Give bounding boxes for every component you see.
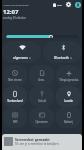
button[interactable]: NFC (3, 107, 27, 128)
button[interactable]: Screenshot gemaakt (2, 134, 82, 150)
staticText: Niet storen (8, 78, 22, 82)
staticText: Opnemen (35, 120, 48, 124)
staticText: zondag 30 oktober (3, 16, 26, 20)
staticText: 28% (57, 3, 62, 6)
button[interactable]: Batterij (56, 107, 81, 128)
button[interactable]: Niet storen (3, 65, 27, 86)
staticText: NFC (13, 120, 18, 124)
staticText: Toetsenbord (7, 99, 23, 103)
button[interactable]: Geluid (29, 86, 54, 107)
button[interactable]: Gebruiker (74, 1, 81, 8)
button[interactable]: Helderheid (6, 35, 78, 38)
button[interactable]: Vliegtuigmodus (56, 65, 81, 86)
staticText: Screenshot gemaakt (15, 137, 50, 142)
button[interactable]: Instellingen (65, 1, 72, 8)
staticText: algemeen (13, 56, 28, 60)
staticText: Bluetooth (54, 56, 69, 60)
button[interactable]: Opnemen (29, 107, 54, 128)
staticText: 12:07 (3, 8, 19, 16)
staticText: Tik om je screenshot te bekijken (15, 142, 59, 146)
staticText: Batterij (64, 120, 73, 124)
staticText: Geluid (38, 99, 46, 103)
button[interactable]: Bluetooth (43, 41, 82, 63)
staticText: Gsm-netwerkoproep (29, 78, 54, 82)
staticText: Alleen noodoproepen (3, 3, 29, 6)
staticText: Locatie (64, 99, 73, 103)
staticText: Vliegtuigmodus (59, 78, 79, 82)
button[interactable]: algemeen (2, 41, 41, 63)
button[interactable]: Toetsenbord (3, 86, 27, 107)
button[interactable]: Locatie (56, 86, 81, 107)
button[interactable]: Gsm-netwerkoproep (29, 65, 54, 86)
